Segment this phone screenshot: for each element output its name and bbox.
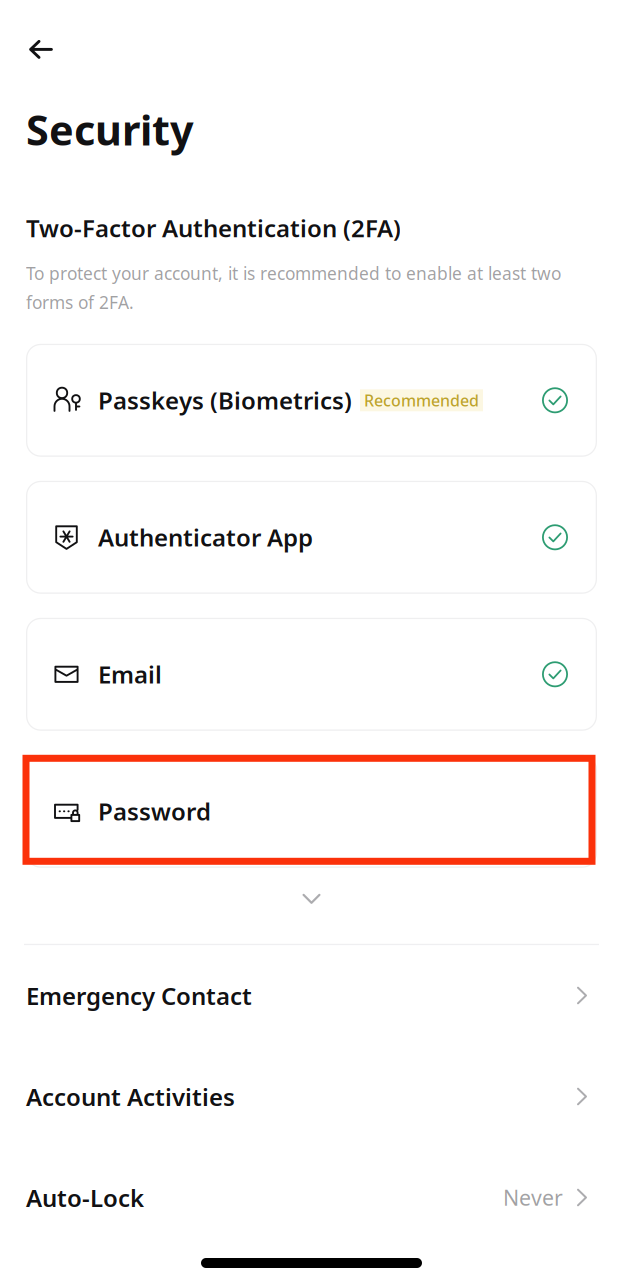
button[interactable]: Account Activities (0, 1046, 623, 1147)
staticText: To protect your account, it is recommend… (26, 262, 561, 314)
staticText: Never (503, 1183, 563, 1212)
button[interactable]: Authenticator App (26, 481, 597, 594)
button[interactable]: Auto-Lock (0, 1147, 623, 1248)
staticText: Auto-Lock (26, 1182, 144, 1214)
staticText: Emergency Contact (26, 980, 252, 1012)
button[interactable]: Emergency Contact (0, 945, 623, 1046)
staticText: Recommended (364, 390, 479, 411)
button[interactable]: Email (26, 618, 597, 731)
staticText: Two-Factor Authentication (2FA) (26, 212, 401, 244)
staticText: Password (98, 795, 211, 827)
button[interactable]: Password (26, 755, 597, 868)
staticText: Account Activities (26, 1081, 235, 1113)
staticText: Security (26, 102, 194, 157)
staticText: Passkeys (Biometrics) (98, 384, 352, 416)
staticText: Email (98, 658, 162, 690)
button[interactable]: Passkeys (Biometrics) (26, 344, 597, 457)
staticText: Authenticator App (98, 521, 313, 553)
button[interactable]: Back (0, 0, 69, 73)
